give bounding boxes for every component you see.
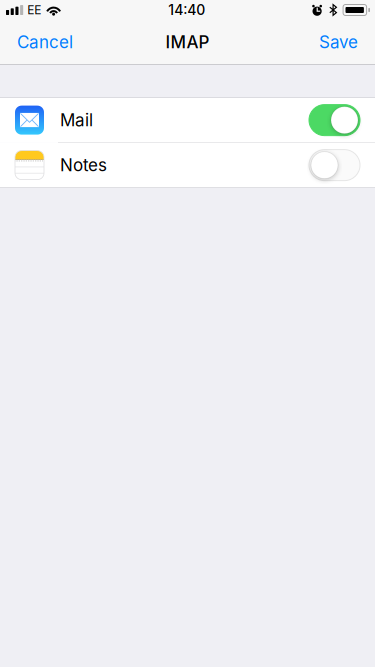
button[interactable]: Notes switch [309, 150, 375, 181]
staticText: IMAP [165, 32, 209, 52]
staticText: Cancel [17, 32, 73, 52]
staticText: EE [27, 3, 41, 17]
button[interactable]: Cancel [8, 21, 82, 63]
button[interactable]: Mail switch [309, 105, 375, 136]
button[interactable]: Save [310, 21, 367, 63]
staticText: Notes [60, 155, 107, 175]
staticText: Save [319, 32, 358, 52]
staticText: Mail [60, 110, 93, 130]
staticText: 14:40 [168, 1, 205, 18]
